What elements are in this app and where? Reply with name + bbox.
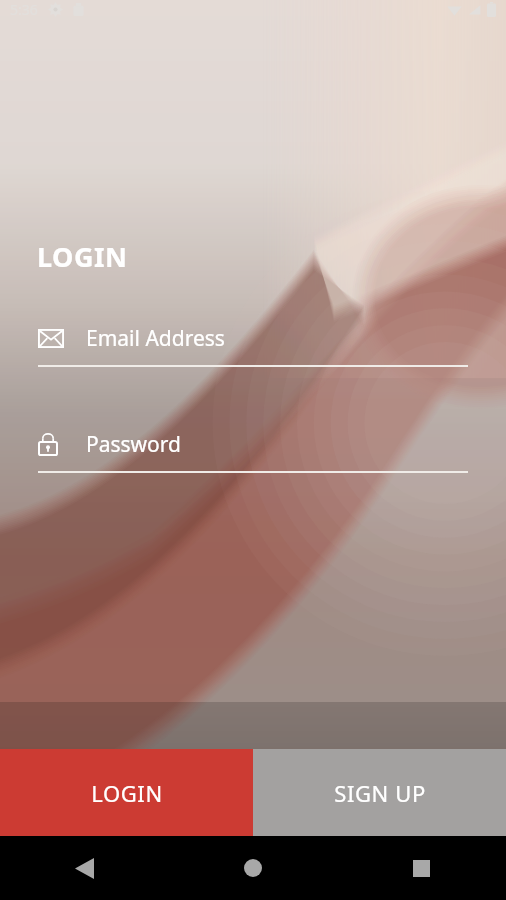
other: Email xyxy=(38,329,64,348)
button[interactable]: Back xyxy=(0,836,168,900)
button[interactable]: Recent apps xyxy=(337,836,506,900)
staticText: SIGN UP xyxy=(334,778,426,808)
button[interactable]: Password xyxy=(38,429,468,473)
button[interactable]: Home xyxy=(168,836,337,900)
staticText: Password xyxy=(86,430,181,459)
button[interactable]: Email xyxy=(38,323,468,367)
button[interactable]: SIGN UP xyxy=(253,749,506,836)
staticText: Email Address xyxy=(86,324,225,353)
other: Password xyxy=(38,432,58,456)
button[interactable]: LOGIN xyxy=(0,749,253,836)
staticText: LOGIN xyxy=(37,238,128,275)
staticText: LOGIN xyxy=(91,778,163,808)
